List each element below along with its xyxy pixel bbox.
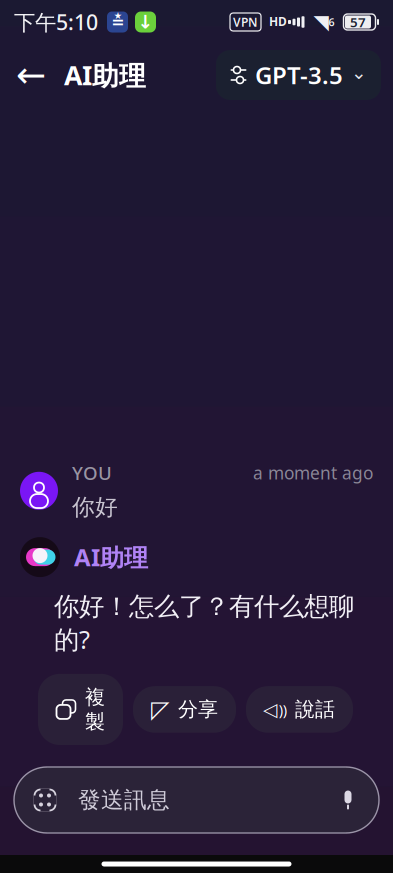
staticText: AI助理 <box>74 541 148 573</box>
staticText: 分享 <box>178 697 218 722</box>
staticText: 下午5:10 <box>14 8 98 36</box>
staticText: 說話 <box>295 697 335 722</box>
staticText: )) <box>279 700 287 719</box>
staticText: ◥ <box>313 11 328 33</box>
staticText: 57 <box>350 13 366 31</box>
staticText: ◁ <box>263 699 277 720</box>
staticText: 你好 <box>72 493 118 521</box>
staticText: 發送訊息 <box>78 786 170 814</box>
staticText: ≛ <box>111 13 124 31</box>
staticText: HD <box>269 13 287 29</box>
staticText: ◸ <box>151 696 169 723</box>
button[interactable]: Back <box>6 50 56 100</box>
staticText: 6 <box>328 15 334 29</box>
staticText: 你好！怎么了？有什么想聊的? <box>54 591 354 656</box>
staticText: ← <box>16 55 46 95</box>
button[interactable]: Voice input <box>335 787 361 813</box>
staticText: ⌄ <box>351 62 367 83</box>
staticText: ↓ <box>137 11 153 33</box>
button[interactable]: ◁ <box>246 686 353 733</box>
button[interactable]: ◸ <box>133 686 236 733</box>
staticText: AI助理 <box>64 57 146 93</box>
button[interactable]: Scan <box>30 785 60 815</box>
staticText: YOU <box>72 460 112 485</box>
staticText: 複製 <box>85 685 105 734</box>
button[interactable]: GPT-3.5 <box>216 50 381 100</box>
staticText: a moment ago <box>253 461 373 484</box>
staticText: VPN <box>233 14 258 30</box>
staticText: GPT-3.5 <box>255 59 343 91</box>
button[interactable]: 複製 <box>38 674 123 745</box>
